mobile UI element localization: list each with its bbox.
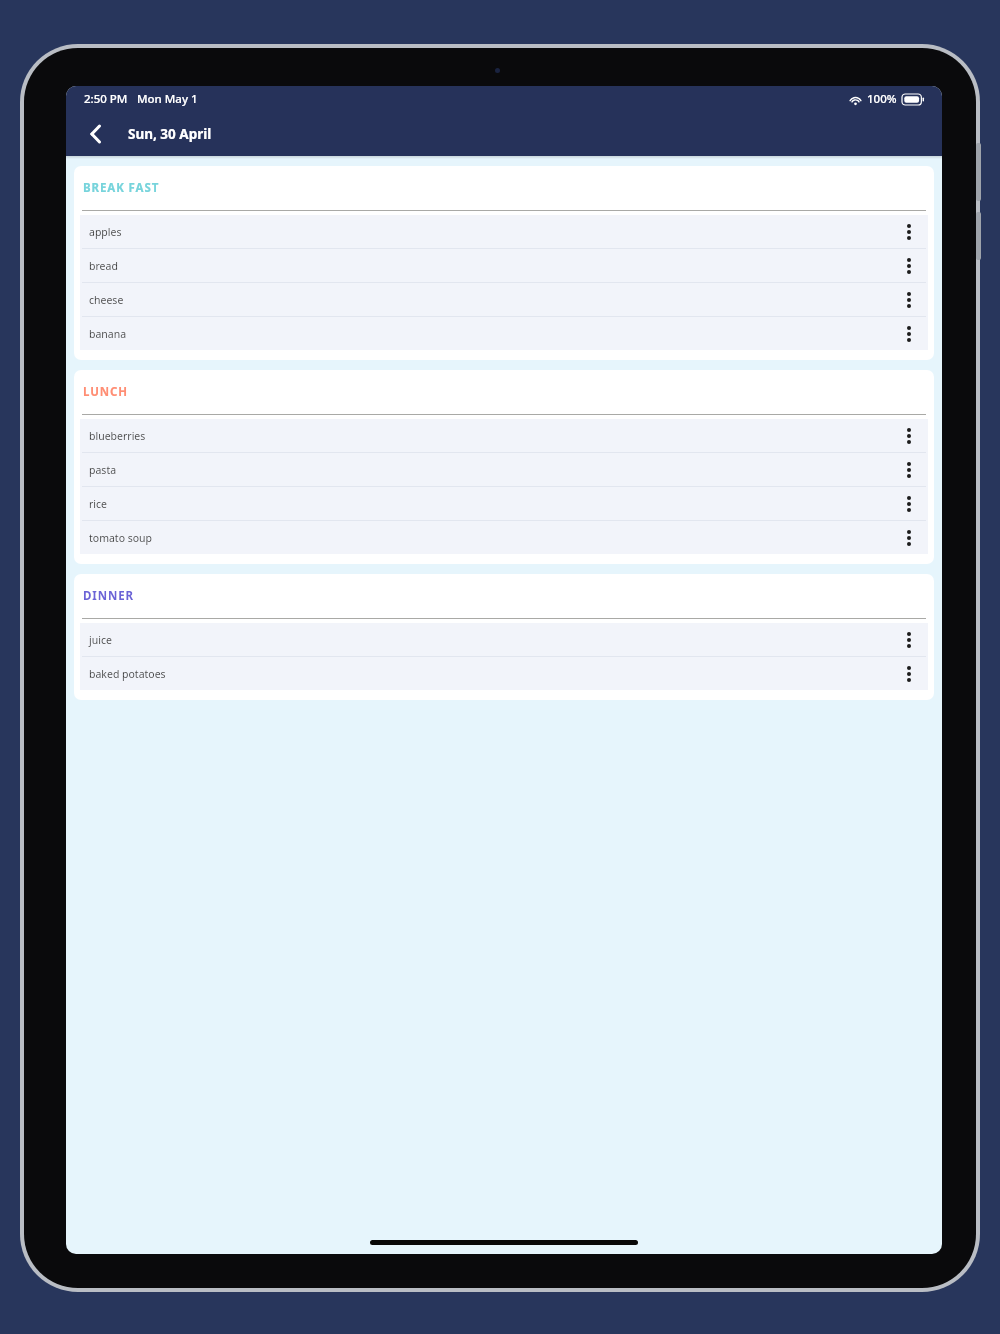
button[interactable]: Back bbox=[74, 112, 118, 156]
staticText: LUNCH bbox=[83, 384, 129, 400]
button[interactable]: More options for banana bbox=[894, 319, 924, 349]
staticText: rice bbox=[89, 497, 108, 511]
button[interactable]: banana bbox=[80, 317, 928, 350]
button[interactable]: blueberries bbox=[80, 419, 928, 452]
button[interactable]: rice bbox=[80, 487, 928, 520]
staticText: bread bbox=[89, 259, 118, 273]
button[interactable]: More options for juice bbox=[894, 625, 924, 655]
staticText: BREAK FAST bbox=[83, 180, 160, 196]
button[interactable]: bread bbox=[80, 249, 928, 282]
staticText: blueberries bbox=[89, 429, 146, 443]
button[interactable]: More options for apples bbox=[894, 217, 924, 247]
button[interactable]: tomato soup bbox=[80, 521, 928, 554]
staticText: pasta bbox=[89, 463, 117, 477]
button[interactable]: More options for blueberries bbox=[894, 421, 924, 451]
staticText: 100% bbox=[867, 91, 897, 107]
button[interactable]: More options for pasta bbox=[894, 455, 924, 485]
button[interactable]: apples bbox=[80, 215, 928, 248]
staticText: juice bbox=[89, 633, 112, 647]
staticText: cheese bbox=[89, 293, 124, 307]
staticText: apples bbox=[89, 225, 122, 239]
button[interactable]: More options for bread bbox=[894, 251, 924, 281]
button[interactable]: More options for tomato soup bbox=[894, 523, 924, 553]
staticText: Mon May 1 bbox=[137, 91, 198, 107]
staticText: DINNER bbox=[83, 588, 134, 604]
staticText: tomato soup bbox=[89, 531, 153, 545]
button[interactable]: cheese bbox=[80, 283, 928, 316]
staticText: baked potatoes bbox=[89, 667, 166, 681]
button[interactable]: More options for baked potatoes bbox=[894, 659, 924, 689]
button[interactable]: baked potatoes bbox=[80, 657, 928, 690]
staticText: banana bbox=[89, 327, 127, 341]
staticText: 2:50 PM bbox=[84, 91, 128, 107]
button[interactable]: More options for cheese bbox=[894, 285, 924, 315]
staticText: Sun, 30 April bbox=[128, 125, 212, 143]
button[interactable]: juice bbox=[80, 623, 928, 656]
button[interactable]: More options for rice bbox=[894, 489, 924, 519]
button[interactable]: pasta bbox=[80, 453, 928, 486]
